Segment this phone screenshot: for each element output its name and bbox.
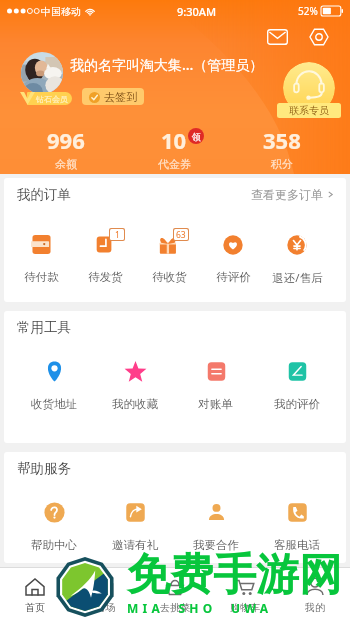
staticText: 358 — [263, 125, 301, 155]
button[interactable]: 邀请有礼 — [94, 501, 175, 552]
staticText: 9:30AM — [177, 4, 217, 19]
button[interactable]: 查看更多订单 — [251, 187, 334, 202]
button[interactable]: 去挑菜 — [140, 568, 210, 622]
button[interactable]: 设置 — [306, 24, 332, 50]
staticText: 帮助中心 — [31, 538, 77, 552]
staticText: 邀请有礼 — [112, 538, 158, 552]
staticText: 帮助服务 — [17, 460, 71, 477]
staticText: 联系专员 — [289, 104, 329, 117]
staticText: 我的 — [305, 601, 325, 614]
staticText: 996 — [47, 125, 85, 155]
staticText: 查看更多订单 — [251, 187, 323, 202]
button[interactable]: 63 — [137, 233, 201, 284]
staticText: 余额 — [55, 157, 77, 171]
button[interactable]: 1 — [73, 233, 137, 284]
staticText: 常用工具 — [17, 319, 71, 336]
staticText: 52% — [298, 4, 318, 18]
staticText: 我的名字叫淘大集…（管理员） — [70, 55, 264, 74]
staticText: 去签到 — [104, 90, 137, 104]
staticText: 待收货 — [152, 270, 187, 284]
staticText: 商场 — [95, 601, 115, 614]
button[interactable]: 退还/售后 — [265, 233, 329, 286]
staticText: 63 — [176, 229, 186, 240]
staticText: 我的评价 — [274, 397, 320, 411]
button[interactable]: 去签到 — [82, 88, 144, 105]
button[interactable]: 收货地址 — [13, 360, 94, 411]
button[interactable]: 我的收藏 — [94, 360, 175, 411]
staticText: 待发货 — [88, 270, 123, 284]
staticText: 1 — [115, 229, 120, 240]
button[interactable]: 消息 — [264, 24, 290, 50]
staticText: 代金券 — [158, 157, 191, 171]
staticText: 我要合作 — [193, 538, 239, 552]
button[interactable]: 待评价 — [201, 233, 265, 284]
button[interactable]: 996 — [11, 125, 120, 172]
staticText: 收货地址 — [31, 397, 77, 411]
button[interactable]: 我的评价 — [256, 360, 337, 411]
staticText: 10 — [161, 125, 187, 155]
staticText: 客服电话 — [274, 538, 320, 552]
button[interactable]: 商场 — [70, 568, 140, 622]
staticText: 积分 — [271, 157, 293, 171]
staticText: 首页 — [25, 601, 45, 614]
button[interactable]: 待付款 — [9, 233, 73, 284]
button[interactable]: 头像 — [21, 52, 63, 94]
staticText: 退还/售后 — [272, 270, 323, 286]
staticText: 领 — [192, 131, 201, 142]
staticText: MIA SHO UWA — [127, 600, 273, 616]
staticText: 对账单 — [198, 397, 233, 411]
button[interactable]: 我要合作 — [175, 501, 256, 552]
button[interactable]: 358 — [228, 125, 336, 172]
button[interactable]: 联系专员 — [283, 62, 335, 114]
staticText: 我的订单 — [17, 186, 71, 203]
button[interactable]: 首页 — [0, 568, 70, 622]
staticText: 免费手游网 — [127, 548, 342, 602]
staticText: 我的收藏 — [112, 397, 158, 411]
staticText: 去挑菜 — [160, 601, 190, 614]
button[interactable]: 购物车 — [210, 568, 280, 622]
staticText: 待评价 — [216, 270, 251, 284]
button[interactable]: 帮助中心 — [13, 501, 94, 552]
staticText: 待付款 — [24, 270, 59, 284]
staticText: 钻石会员 — [36, 94, 68, 104]
button[interactable]: 对账单 — [175, 360, 256, 411]
button[interactable]: 我的 — [280, 568, 350, 622]
button[interactable]: 10 — [120, 125, 228, 172]
staticText: 中国移动 — [41, 5, 81, 18]
staticText: 购物车 — [230, 601, 260, 614]
button[interactable]: 客服电话 — [256, 501, 337, 552]
